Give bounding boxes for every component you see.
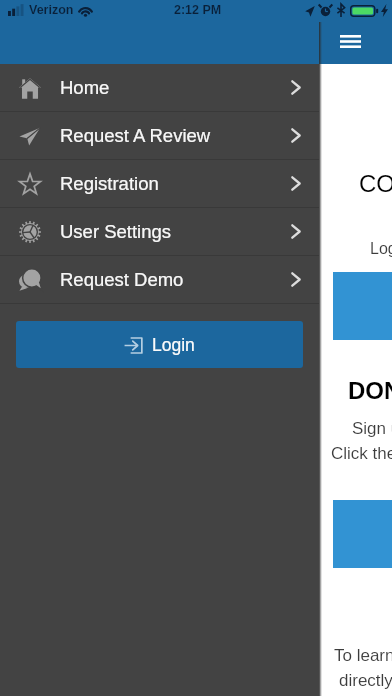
- button[interactable]: User Settings: [0, 208, 319, 255]
- staticText: Home: [60, 77, 110, 98]
- staticText: To learn: [334, 646, 392, 665]
- staticText: Verizon: [29, 3, 74, 17]
- staticText: Registration: [60, 173, 159, 194]
- staticText: Request A Review: [60, 125, 211, 146]
- staticText: Sign u: [352, 419, 392, 438]
- button[interactable]: Registration: [0, 160, 319, 207]
- staticText: Request Demo: [60, 269, 184, 290]
- button[interactable]: Open navigation menu: [328, 19, 372, 63]
- button[interactable]: Request Demo: [0, 256, 319, 303]
- staticText: Login: [152, 335, 195, 355]
- button[interactable]: Request A Review: [0, 112, 319, 159]
- staticText: 2:12 PM: [174, 3, 222, 17]
- button[interactable]: Home: [0, 64, 319, 111]
- staticText: directly: [339, 671, 392, 690]
- staticText: DONE: [348, 377, 392, 404]
- button[interactable]: Login: [16, 321, 303, 368]
- staticText: Click the: [331, 444, 392, 463]
- staticText: User Settings: [60, 221, 172, 242]
- staticText: Login: [370, 240, 392, 258]
- staticText: COMPANY: [359, 170, 392, 197]
